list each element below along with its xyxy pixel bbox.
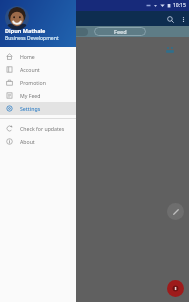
button[interactable]: Home	[0, 50, 76, 63]
other: Members	[165, 45, 175, 55]
button[interactable]: Check for updates	[0, 122, 76, 135]
staticText: Promotion	[20, 79, 46, 86]
staticText: Settings	[20, 105, 41, 112]
staticText: My Feed	[20, 92, 41, 99]
button[interactable]: Promotion	[0, 76, 76, 89]
staticText: Business Development	[5, 35, 59, 42]
button[interactable]	[62, 28, 88, 36]
button[interactable]: Feed	[94, 27, 146, 36]
staticText: Dipun Mathale	[5, 27, 46, 34]
staticText: About	[20, 138, 35, 145]
button[interactable]: Edit	[167, 203, 184, 220]
button[interactable]: Account	[0, 63, 76, 76]
staticText: Check for updates	[20, 125, 65, 132]
button[interactable]: More options	[177, 13, 189, 25]
staticText: 10:15	[173, 2, 186, 9]
button[interactable]: Profile photo	[5, 6, 29, 30]
button[interactable]: About	[0, 135, 76, 148]
button[interactable]: Record	[167, 280, 184, 297]
staticText: Home	[20, 53, 35, 60]
staticText: Account	[20, 66, 40, 73]
button[interactable]: Settings	[0, 102, 76, 115]
button[interactable]: My Feed	[0, 89, 76, 102]
staticText: Feed	[114, 28, 127, 35]
button[interactable]: Search	[163, 12, 177, 26]
